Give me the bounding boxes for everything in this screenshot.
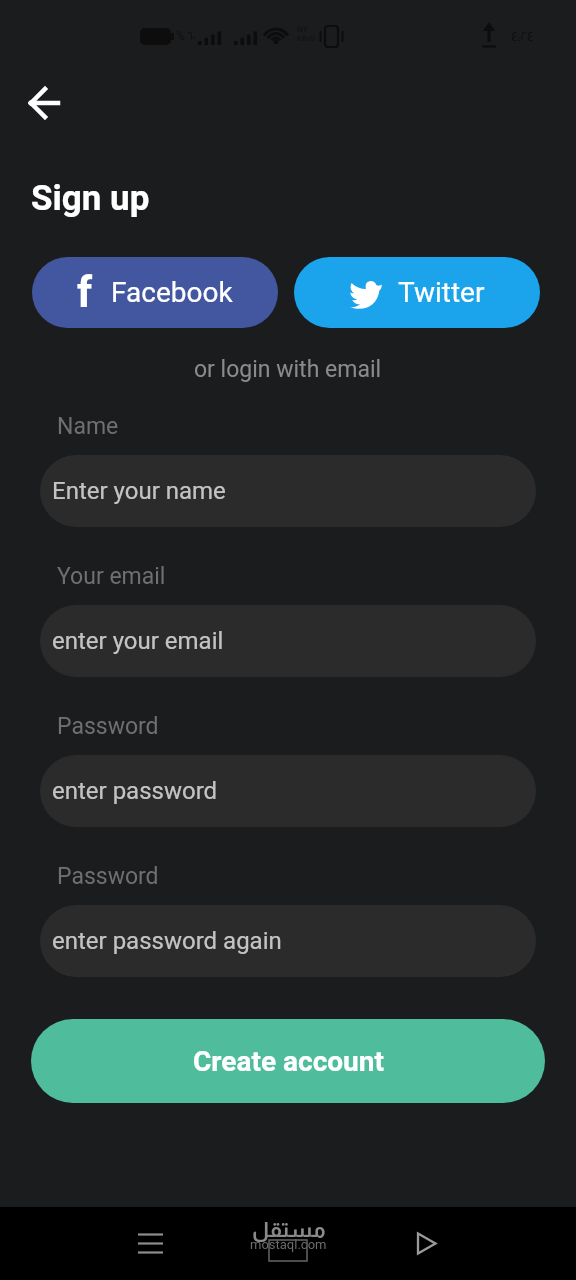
button[interactable]: Create account bbox=[31, 1019, 545, 1103]
button[interactable]: Twitter bbox=[294, 257, 540, 328]
button[interactable]: Enter your name bbox=[40, 455, 536, 527]
staticText: Name bbox=[57, 413, 119, 440]
staticText: ١٧٧ bbox=[297, 25, 308, 34]
button[interactable]: مستقل bbox=[250, 1218, 327, 1256]
button[interactable] bbox=[22, 80, 68, 126]
staticText: Create account bbox=[193, 1045, 384, 1078]
staticText: % bbox=[176, 29, 185, 43]
staticText: KB/S bbox=[297, 34, 316, 43]
staticText: ٤:٢٤ bbox=[511, 29, 534, 44]
staticText: Password bbox=[57, 863, 159, 890]
staticText: enter your email bbox=[52, 627, 224, 655]
button[interactable]: enter password again bbox=[40, 905, 536, 977]
staticText: مستقل bbox=[252, 1218, 326, 1241]
staticText: Enter your name bbox=[52, 477, 226, 505]
button[interactable] bbox=[124, 1217, 176, 1269]
staticText: enter password again bbox=[52, 927, 282, 955]
staticText: Your email bbox=[57, 563, 166, 590]
staticText: Facebook bbox=[111, 276, 233, 309]
button[interactable]: enter your email bbox=[40, 605, 536, 677]
staticText: f bbox=[77, 268, 93, 317]
staticText: ٦٠ bbox=[187, 30, 196, 42]
staticText: Password bbox=[57, 713, 159, 740]
button[interactable] bbox=[400, 1217, 452, 1269]
button[interactable]: f bbox=[32, 257, 278, 328]
staticText: Sign up bbox=[31, 178, 150, 219]
staticText: enter password bbox=[52, 777, 218, 805]
staticText: Twitter bbox=[398, 276, 485, 309]
staticText: mostaql.com bbox=[250, 1237, 327, 1252]
button[interactable]: enter password bbox=[40, 755, 536, 827]
staticText: or login with email bbox=[194, 356, 382, 383]
